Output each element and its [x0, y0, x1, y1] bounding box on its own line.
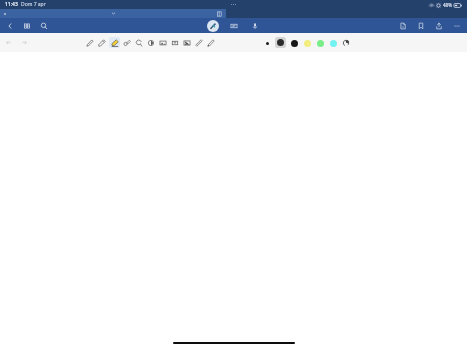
button[interactable]: Sticker: [182, 38, 192, 48]
button[interactable]: Back: [4, 20, 16, 32]
button[interactable]: Colour green: [315, 38, 325, 48]
button[interactable]: Page list: [21, 20, 33, 32]
button[interactable]: Colour black: [289, 38, 299, 48]
other: Split screen: [217, 11, 223, 17]
button[interactable]: Search: [38, 20, 50, 32]
button[interactable]: Shapes: [146, 38, 156, 48]
button[interactable]: Pencil: [97, 38, 107, 48]
button[interactable]: Ruler: [194, 38, 204, 48]
button[interactable]: Colour cyan: [328, 38, 338, 48]
button[interactable]: Lasso select: [134, 38, 144, 48]
button[interactable]: Text mode: [228, 20, 240, 32]
button[interactable]: Insert image: [158, 38, 168, 48]
staticText: 11:43: [5, 1, 18, 8]
button[interactable]: Eraser: [122, 38, 132, 48]
button[interactable]: Pen settings: [206, 38, 216, 48]
button[interactable]: Undo: [5, 39, 13, 47]
button[interactable]: Colour dark grey selected: [275, 37, 286, 48]
button[interactable]: More options: [451, 20, 463, 32]
button[interactable]: Highlighter selected: [109, 37, 120, 48]
button[interactable]: Bookmark: [415, 20, 427, 32]
button[interactable]: Share: [433, 20, 445, 32]
button[interactable]: Colour yellow: [302, 38, 312, 48]
button[interactable]: Draw mode: [207, 20, 219, 32]
button[interactable]: Window tab: [0, 9, 226, 18]
button[interactable]: Pen: [85, 38, 95, 48]
button[interactable]: Voice recording: [249, 20, 261, 32]
button[interactable]: Stroke thickness: [262, 38, 272, 48]
button[interactable]: Redo: [20, 39, 28, 47]
button[interactable]: Text box: [170, 38, 180, 48]
staticText: 48%: [443, 2, 452, 8]
staticText: Dom 7 apr: [21, 1, 46, 8]
button[interactable]: New page: [397, 20, 409, 32]
button[interactable]: Custom colour: [341, 38, 351, 48]
